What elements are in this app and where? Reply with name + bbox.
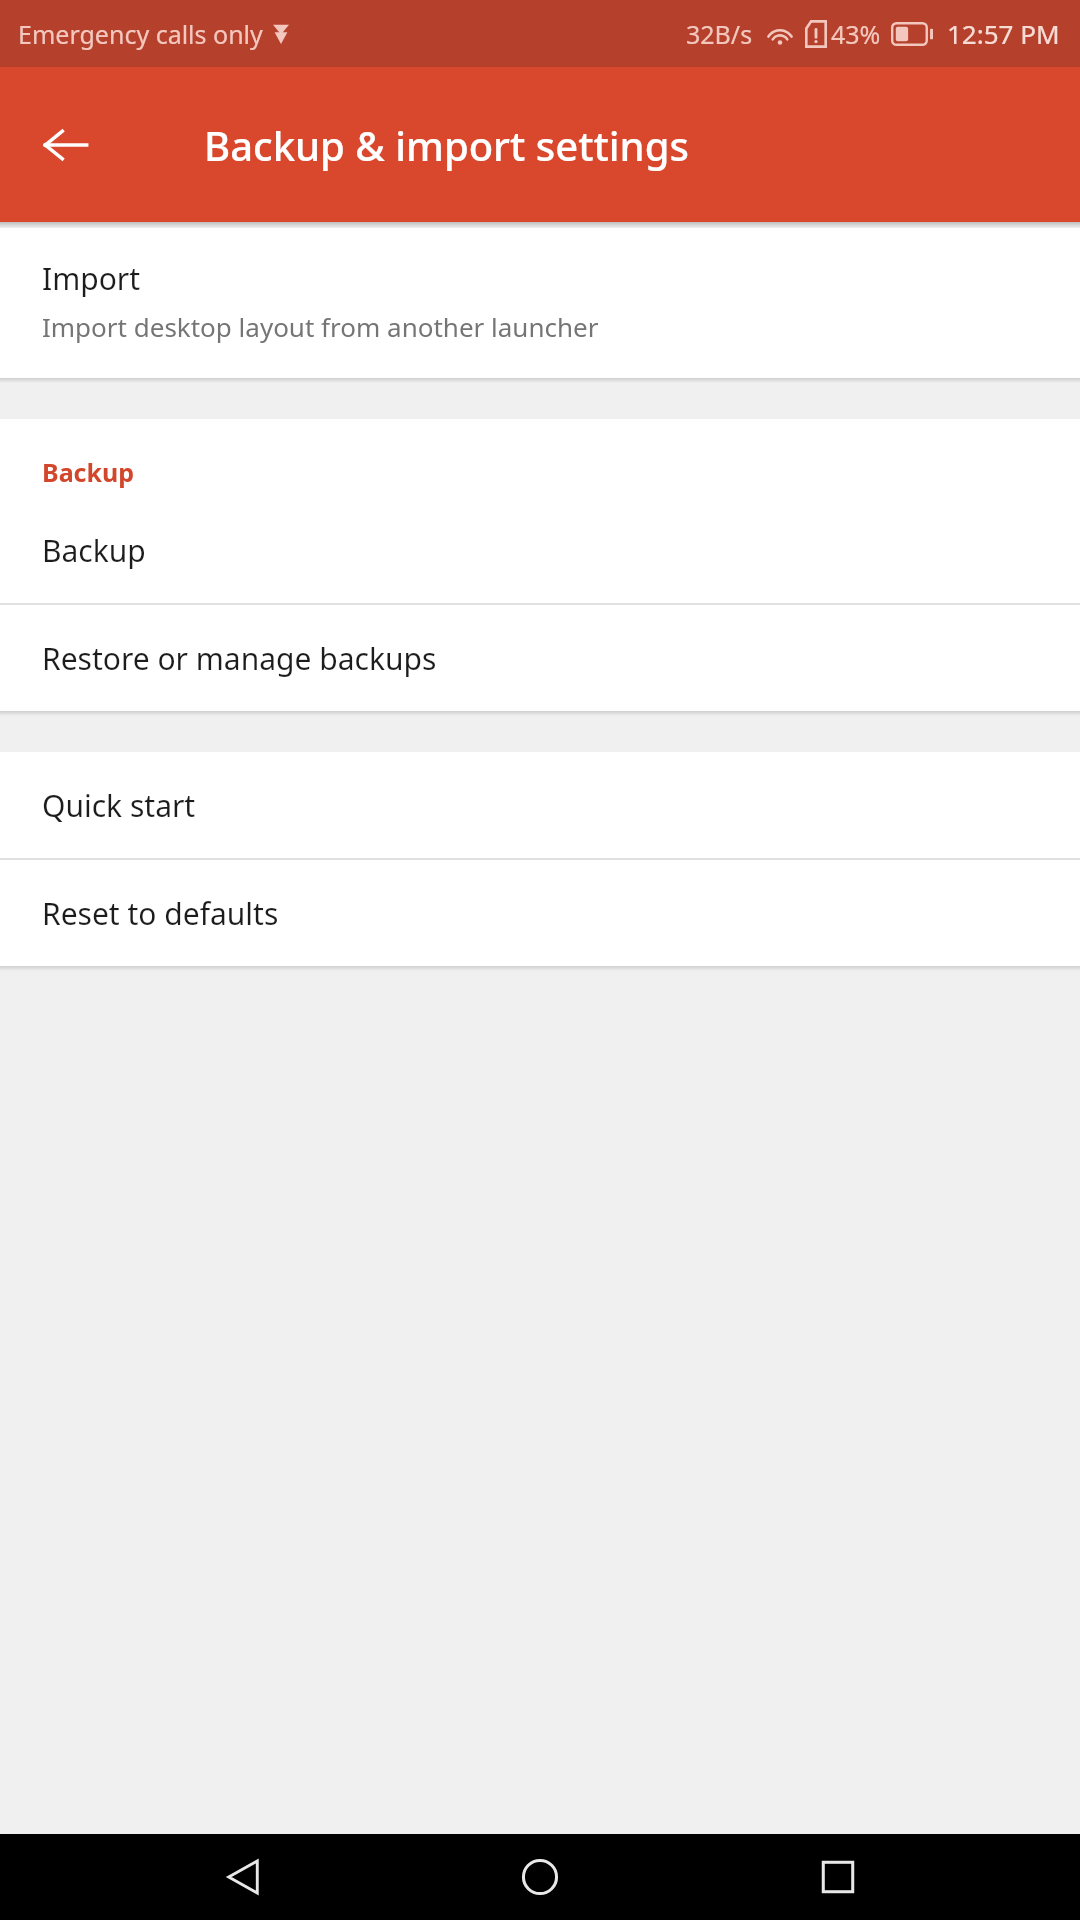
- button[interactable]: Home: [485, 1834, 595, 1920]
- button[interactable]: Recent apps: [783, 1834, 893, 1920]
- staticText: Backup: [42, 455, 135, 489]
- button[interactable]: Reset to defaults: [0, 860, 1080, 966]
- staticText: 43%: [831, 17, 881, 51]
- staticText: Emergency calls only: [18, 17, 263, 51]
- staticText: Restore or manage backups: [42, 638, 437, 679]
- button[interactable]: Import: [0, 228, 1080, 378]
- staticText: Backup: [42, 530, 146, 571]
- button[interactable]: Back: [188, 1834, 298, 1920]
- button[interactable]: Back: [22, 101, 110, 189]
- button[interactable]: Quick start: [0, 752, 1080, 858]
- staticText: 32B/s: [686, 17, 753, 51]
- staticText: Import: [42, 258, 141, 299]
- button[interactable]: Restore or manage backups: [0, 605, 1080, 711]
- staticText: Backup & import settings: [204, 118, 689, 172]
- staticText: Quick start: [42, 785, 196, 826]
- staticText: 12:57 PM: [947, 16, 1060, 51]
- button[interactable]: Backup: [0, 497, 1080, 603]
- staticText: Reset to defaults: [42, 893, 279, 934]
- staticText: Import desktop layout from another launc…: [42, 309, 599, 344]
